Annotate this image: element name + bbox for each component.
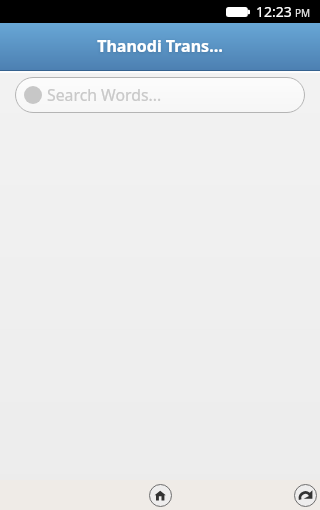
button[interactable] xyxy=(15,77,305,113)
staticText: Thanodi Trans… xyxy=(97,35,223,57)
staticText: Search Words... xyxy=(47,84,162,106)
staticText: PM xyxy=(295,6,311,20)
button[interactable]: Recent apps xyxy=(291,480,319,510)
button[interactable]: Home xyxy=(145,480,175,510)
staticText: 12:23 xyxy=(256,2,292,21)
